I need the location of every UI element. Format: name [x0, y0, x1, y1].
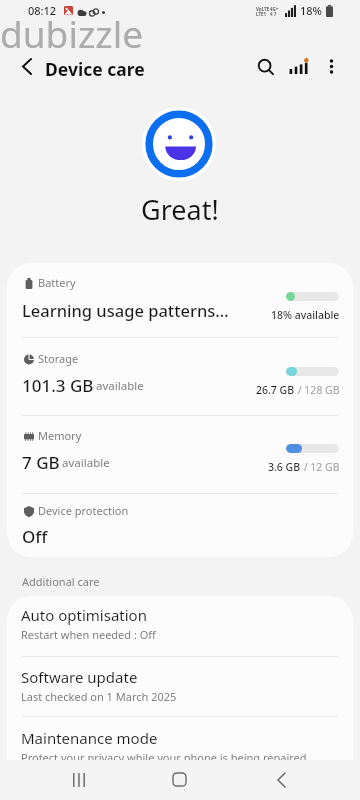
- staticText: dubizzle: [0, 8, 144, 58]
- staticText: Device care: [45, 57, 145, 81]
- button[interactable]: Usage graph: [280, 40, 317, 77]
- staticText: Learning usage patterns…: [22, 299, 229, 321]
- staticText: 26.7 GB: [256, 383, 295, 397]
- staticText: / 12 GB: [301, 460, 340, 474]
- staticText: Auto optimisation: [21, 605, 147, 625]
- button[interactable]: [7, 416, 353, 493]
- staticText: 4G+: [270, 6, 279, 12]
- staticText: Maintenance mode: [21, 728, 158, 748]
- staticText: LTE1: [256, 11, 267, 17]
- staticText: Battery: [38, 275, 76, 290]
- staticText: 18% available: [271, 308, 340, 322]
- staticText: 101.3 GB: [22, 374, 94, 397]
- staticText: Restart when needed : Off: [21, 627, 156, 642]
- staticText: Great!: [141, 191, 219, 228]
- staticText: 08:12: [28, 3, 57, 18]
- button[interactable]: Back: [261, 760, 301, 800]
- button[interactable]: Back: [7, 40, 47, 80]
- staticText: Software update: [21, 667, 138, 687]
- staticText: / 128 GB: [295, 383, 340, 397]
- staticText: Last checked on 1 March 2025: [21, 689, 177, 704]
- staticText: Storage: [38, 351, 79, 366]
- staticText: Protect your privacy while your phone is…: [21, 750, 307, 765]
- staticText: Device protection: [38, 503, 129, 518]
- button[interactable]: Recent apps: [59, 760, 99, 800]
- staticText: 18%: [300, 3, 322, 18]
- button[interactable]: [7, 494, 353, 557]
- staticText: available: [96, 378, 144, 394]
- staticText: Additional care: [22, 574, 100, 589]
- staticText: Memory: [38, 428, 82, 443]
- button[interactable]: [7, 596, 353, 656]
- staticText: 4 7: [270, 11, 277, 17]
- button[interactable]: Search: [246, 40, 285, 79]
- staticText: VoLTE: [256, 6, 270, 12]
- button[interactable]: Home: [160, 760, 200, 800]
- button[interactable]: [7, 338, 353, 415]
- staticText: Off: [22, 525, 48, 548]
- button[interactable]: [7, 657, 353, 716]
- button[interactable]: [7, 717, 353, 777]
- button[interactable]: More options: [313, 40, 350, 77]
- staticText: available: [62, 455, 110, 471]
- staticText: 7 GB: [22, 451, 60, 474]
- button[interactable]: [7, 263, 353, 337]
- staticText: 3.6 GB: [268, 460, 301, 474]
